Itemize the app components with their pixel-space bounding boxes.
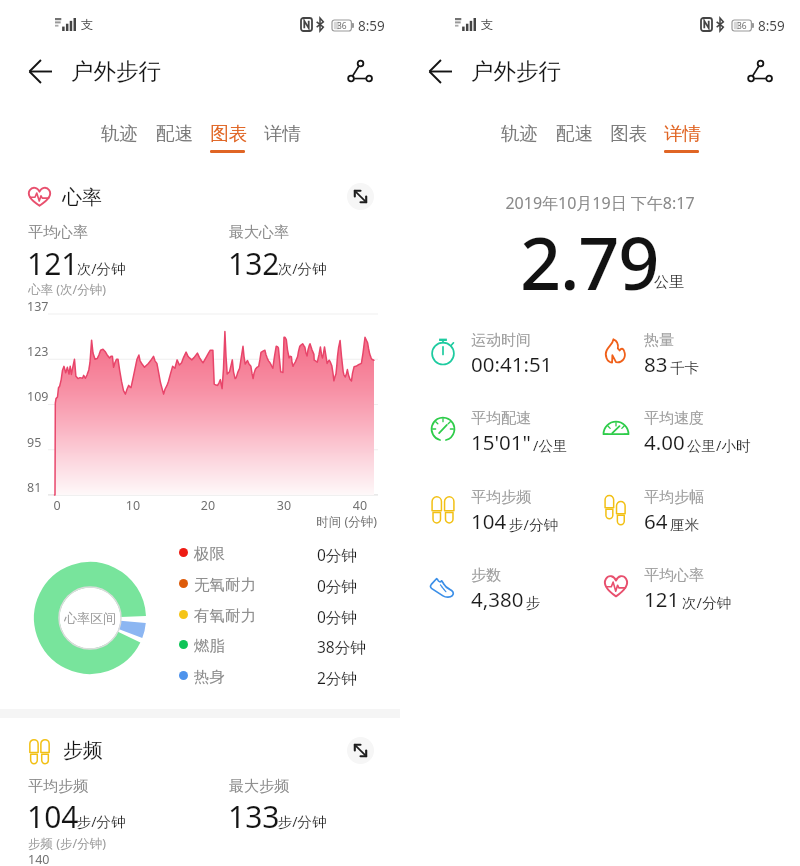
staticText: 次/分钟 — [278, 259, 327, 279]
button[interactable]: 平均心率 — [604, 565, 774, 609]
staticText: 心率 — [62, 185, 102, 210]
button[interactable]: 步数 — [431, 565, 601, 609]
button[interactable]: Back — [18, 49, 62, 93]
staticText: 109 — [27, 388, 49, 405]
staticText: 详情 — [264, 122, 301, 145]
staticText: 轨迹 — [101, 122, 138, 145]
staticText: 36 — [737, 20, 747, 32]
staticText: 支 — [81, 17, 94, 33]
button[interactable]: 有氧耐力 — [172, 599, 372, 629]
staticText: 20 — [188, 497, 228, 514]
button[interactable]: Share — [738, 49, 782, 93]
button[interactable]: Expand — [347, 183, 374, 210]
staticText: 平均心率 — [28, 223, 88, 242]
staticText: 121 — [27, 243, 79, 284]
staticText: 30 — [264, 497, 304, 514]
staticText: 36 — [337, 20, 347, 32]
staticText: 104 — [27, 796, 79, 837]
staticText: 40 — [340, 497, 380, 514]
button[interactable]: 图表 — [601, 114, 654, 152]
staticText: 0分钟 — [317, 606, 357, 627]
button[interactable]: Back — [418, 49, 462, 93]
staticText: 步频 (步/分钟) — [28, 835, 106, 852]
button[interactable]: 配速 — [547, 114, 600, 152]
staticText: 8:59 — [758, 17, 785, 35]
staticText: 0分钟 — [317, 544, 357, 565]
staticText: 极限 — [194, 544, 225, 564]
staticText: 83 — [644, 350, 668, 378]
staticText: 15'01" — [471, 428, 531, 456]
button[interactable]: 图表 — [201, 114, 254, 152]
staticText: 140 — [28, 851, 50, 866]
staticText: 心率区间 — [64, 610, 116, 626]
button[interactable]: 平均配速 — [431, 408, 601, 452]
staticText: 热身 — [194, 667, 225, 687]
staticText: 104 — [471, 507, 507, 535]
button[interactable]: 平均步幅 — [604, 487, 774, 531]
staticText: 配速 — [556, 122, 593, 145]
staticText: 千卡 — [670, 359, 699, 377]
button[interactable]: 燃脂 — [172, 629, 372, 659]
staticText: 4.00 — [644, 428, 685, 456]
staticText: 0 — [37, 497, 77, 514]
staticText: 81 — [27, 479, 42, 496]
button[interactable]: 平均速度 — [604, 408, 774, 452]
button[interactable]: 热量 — [604, 330, 774, 374]
button[interactable]: Expand — [347, 737, 374, 764]
staticText: 平均速度 — [644, 409, 704, 428]
staticText: 步数 — [471, 566, 501, 585]
staticText: 最大步频 — [229, 777, 289, 796]
button[interactable]: 热身 — [172, 660, 372, 690]
staticText: 132 — [228, 243, 280, 284]
staticText: 公里/小时 — [687, 435, 751, 455]
button[interactable]: 运动时间 — [431, 330, 601, 374]
staticText: 轨迹 — [501, 122, 538, 145]
staticText: 64 — [644, 507, 668, 535]
staticText: 运动时间 — [471, 331, 531, 350]
staticText: 次/分钟 — [77, 259, 126, 279]
staticText: 无氧耐力 — [194, 575, 256, 595]
button[interactable]: 平均步频 — [431, 487, 601, 531]
staticText: 10 — [113, 497, 153, 514]
staticText: 38分钟 — [317, 636, 366, 657]
staticText: 有氧耐力 — [194, 606, 256, 626]
button[interactable]: 轨迹 — [492, 114, 545, 152]
staticText: 121 — [644, 585, 680, 613]
staticText: 热量 — [644, 331, 674, 350]
staticText: 步/分钟 — [278, 812, 327, 832]
staticText: 2分钟 — [317, 667, 357, 688]
staticText: /公里 — [533, 435, 568, 455]
staticText: 步/分钟 — [77, 812, 126, 832]
staticText: 2.79 — [520, 213, 659, 311]
staticText: 步/分钟 — [509, 514, 558, 534]
staticText: 95 — [27, 434, 42, 451]
button[interactable]: 无氧耐力 — [172, 568, 372, 598]
staticText: 平均配速 — [471, 409, 531, 428]
staticText: 公里 — [654, 273, 684, 292]
staticText: 123 — [27, 343, 49, 360]
button[interactable]: 详情 — [655, 114, 708, 152]
staticText: 平均心率 — [644, 566, 704, 585]
button[interactable]: 极限 — [172, 537, 372, 567]
staticText: 平均步频 — [28, 777, 88, 796]
staticText: 00:41:51 — [471, 350, 553, 378]
button[interactable]: Share — [338, 49, 382, 93]
button[interactable]: 配速 — [147, 114, 200, 152]
staticText: 平均步频 — [471, 488, 531, 507]
button[interactable]: 轨迹 — [92, 114, 145, 152]
staticText: 137 — [27, 298, 49, 315]
staticText: 心率 (次/分钟) — [28, 281, 106, 298]
staticText: 图表 — [210, 122, 247, 145]
staticText: 133 — [228, 796, 280, 837]
staticText: 步 — [526, 594, 541, 612]
staticText: 时间 (分钟) — [282, 513, 377, 530]
staticText: 2019年10月19日 下午8:17 — [400, 192, 800, 214]
staticText: 户外步行 — [71, 57, 161, 85]
staticText: 图表 — [610, 122, 647, 145]
staticText: 厘米 — [670, 516, 699, 534]
staticText: 详情 — [664, 122, 701, 145]
button[interactable]: 详情 — [255, 114, 308, 152]
staticText: 燃脂 — [194, 636, 225, 656]
staticText: 8:59 — [358, 17, 385, 35]
staticText: 平均步幅 — [644, 488, 704, 507]
